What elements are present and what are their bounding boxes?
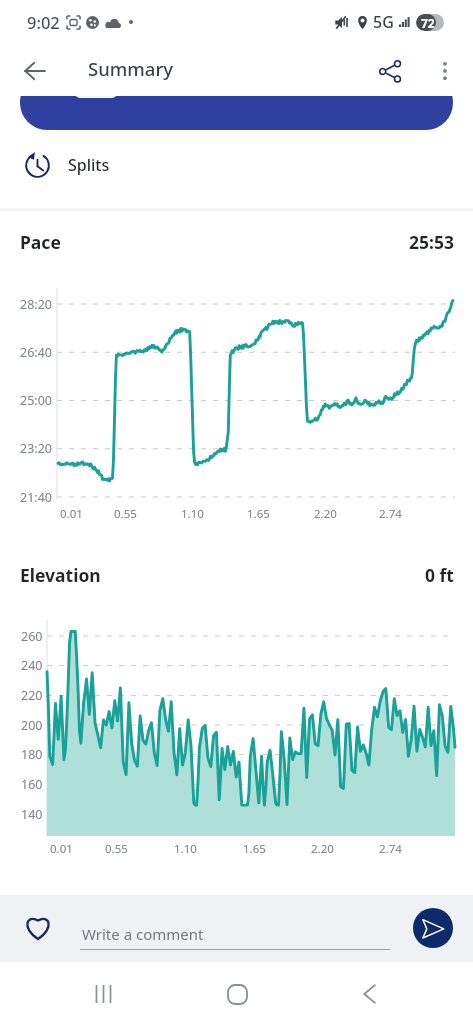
button[interactable]: Write a comment — [80, 919, 390, 956]
staticText: 1.10 — [181, 506, 204, 522]
staticText: Splits — [68, 154, 110, 176]
button[interactable]: Like — [14, 904, 61, 951]
staticText: 25:53 — [409, 230, 454, 250]
button[interactable]: Send — [413, 908, 453, 948]
staticText: 2.74 — [379, 506, 402, 522]
button[interactable]: Recent apps — [75, 966, 131, 1022]
staticText: Summary — [88, 56, 173, 81]
button[interactable]: Resume workout — [20, 75, 453, 130]
button[interactable]: Home — [209, 966, 265, 1022]
staticText: 2.20 — [314, 506, 337, 522]
staticText: 5G — [373, 11, 394, 33]
staticText: 21:40 — [20, 489, 52, 506]
staticText: 25:00 — [20, 392, 52, 409]
button[interactable]: Splits — [0, 137, 473, 193]
staticText: 140 — [21, 806, 43, 823]
staticText: 2.74 — [379, 841, 402, 857]
staticText: 160 — [21, 776, 43, 793]
button[interactable]: Back — [341, 966, 397, 1022]
staticText: 0.01 — [50, 841, 73, 857]
staticText: Elevation — [20, 563, 101, 583]
staticText: 1.65 — [243, 841, 266, 857]
staticText: 2.20 — [311, 841, 334, 857]
staticText: 220 — [21, 687, 43, 704]
staticText: 0.55 — [114, 506, 137, 522]
staticText: 23:20 — [20, 440, 52, 457]
staticText: 180 — [21, 746, 43, 763]
staticText: Write a comment — [82, 924, 204, 944]
staticText: 260 — [21, 628, 43, 645]
staticText: 0.55 — [105, 841, 128, 857]
staticText: Pace — [20, 230, 61, 250]
staticText: 0 ft — [425, 563, 454, 583]
staticText: 9:02 — [27, 11, 60, 33]
staticText: 1.65 — [247, 506, 270, 522]
staticText: 200 — [21, 717, 43, 734]
staticText: 28:20 — [20, 296, 52, 313]
staticText: 240 — [21, 657, 43, 674]
button[interactable]: More options — [423, 49, 467, 93]
staticText: 72 — [421, 15, 435, 31]
button[interactable]: Back — [13, 49, 57, 93]
staticText: 26:40 — [20, 344, 52, 361]
staticText: 0.01 — [60, 506, 83, 522]
staticText: 1.10 — [174, 841, 197, 857]
button[interactable]: Share — [368, 49, 412, 93]
